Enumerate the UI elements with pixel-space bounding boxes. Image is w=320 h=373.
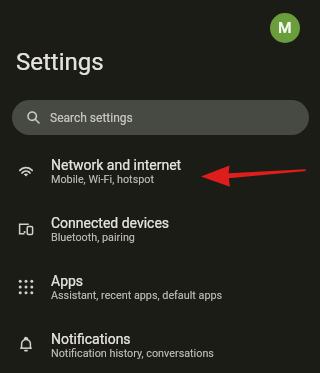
- staticText: Mobile, Wi-Fi, hotspot: [51, 173, 154, 186]
- staticText: Settings: [16, 48, 104, 76]
- staticText: Notifications: [51, 331, 131, 347]
- button[interactable]: Search settings: [12, 100, 309, 135]
- staticText: Search settings: [50, 111, 133, 125]
- button[interactable]: Notifications: [0, 316, 320, 373]
- staticText: Notification history, conversations: [51, 347, 214, 360]
- staticText: Connected devices: [51, 215, 170, 231]
- staticText: Network and internet: [51, 157, 182, 173]
- staticText: Bluetooth, pairing: [51, 231, 135, 244]
- button[interactable]: Connected devices: [0, 200, 320, 258]
- staticText: Apps: [51, 273, 84, 289]
- button[interactable]: M: [270, 13, 300, 43]
- staticText: M: [278, 19, 292, 37]
- staticText: Assistant, recent apps, default apps: [51, 289, 223, 302]
- button[interactable]: Apps: [0, 258, 320, 316]
- button[interactable]: Network and internet: [0, 142, 320, 200]
